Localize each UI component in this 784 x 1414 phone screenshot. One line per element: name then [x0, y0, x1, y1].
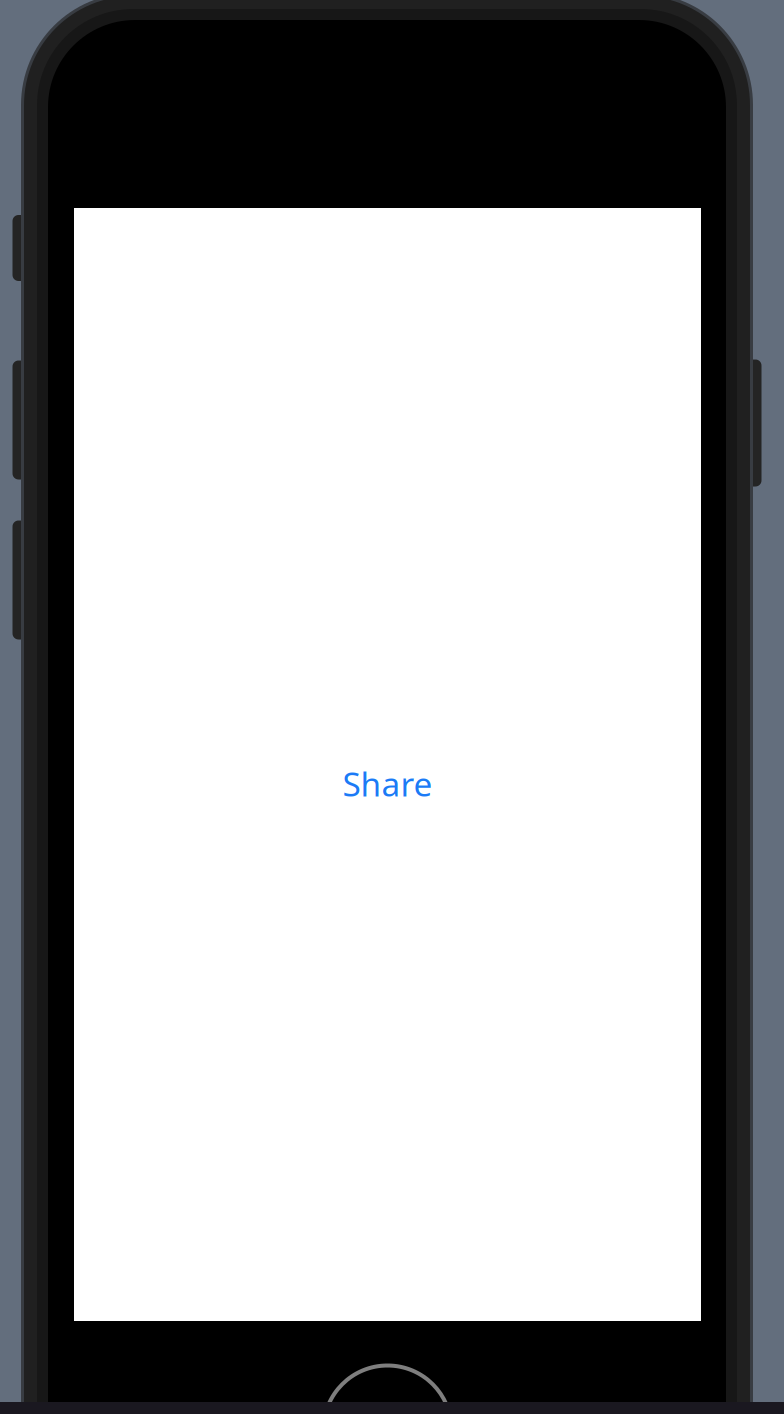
staticText: Share	[342, 761, 432, 806]
button[interactable]: Share	[302, 761, 472, 805]
